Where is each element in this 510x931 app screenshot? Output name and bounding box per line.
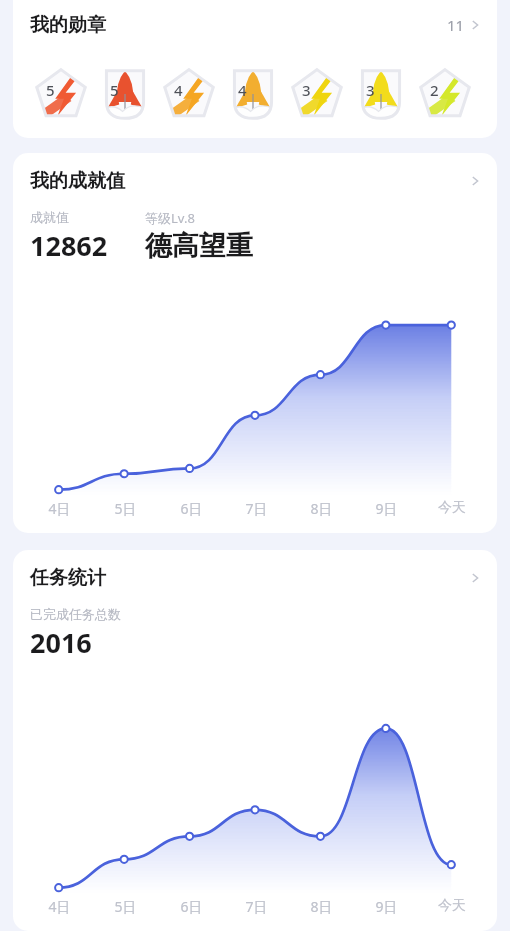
staticText: 11 xyxy=(447,15,465,35)
staticText: 成就值 xyxy=(30,209,69,225)
staticText: 5 xyxy=(46,80,55,100)
button[interactable]: 勋章等级 5 xyxy=(93,58,157,130)
staticText: 7日 xyxy=(245,897,268,916)
staticText: 我的勋章 xyxy=(30,13,106,37)
staticText: 德高望重 xyxy=(145,229,253,263)
staticText: 我的成就值 xyxy=(30,169,125,193)
staticText: 8日 xyxy=(310,897,333,916)
staticText: 4 xyxy=(238,80,247,100)
staticText: 任务统计 xyxy=(30,566,106,590)
staticText: 今天 xyxy=(438,897,466,915)
button[interactable]: 勋章等级 5 xyxy=(29,58,93,130)
staticText: 4日 xyxy=(48,499,71,518)
other: 查看我的成就值 xyxy=(470,176,480,186)
staticText: 5日 xyxy=(114,897,137,916)
button[interactable]: 我的成就值 xyxy=(13,153,497,209)
staticText: 8日 xyxy=(310,499,333,518)
staticText: 7日 xyxy=(245,499,268,518)
staticText: 4 xyxy=(174,80,183,100)
staticText: 5 xyxy=(110,80,119,100)
staticText: 9日 xyxy=(375,897,398,916)
button[interactable]: 勋章等级 3 xyxy=(285,58,349,130)
staticText: 3 xyxy=(302,80,311,100)
button[interactable]: 勋章等级 4 xyxy=(157,58,221,130)
staticText: 12862 xyxy=(30,227,108,264)
button[interactable]: 任务统计 xyxy=(13,550,497,606)
staticText: 5日 xyxy=(114,499,137,518)
other: 查看任务统计 xyxy=(470,573,480,583)
staticText: 9日 xyxy=(375,499,398,518)
staticText: 2016 xyxy=(30,624,92,661)
staticText: 2 xyxy=(430,80,439,100)
staticText: 6日 xyxy=(180,897,203,916)
button[interactable]: 我的勋章 xyxy=(13,0,497,50)
staticText: 3 xyxy=(366,80,375,100)
staticText: 等级Lv.8 xyxy=(145,209,195,227)
staticText: 已完成任务总数 xyxy=(30,606,121,622)
staticText: 4日 xyxy=(48,897,71,916)
button[interactable]: 勋章等级 2 xyxy=(413,58,477,130)
staticText: 6日 xyxy=(180,499,203,518)
button[interactable]: 勋章等级 3 xyxy=(349,58,413,130)
button[interactable]: 勋章等级 4 xyxy=(221,58,285,130)
staticText: 今天 xyxy=(438,499,466,517)
